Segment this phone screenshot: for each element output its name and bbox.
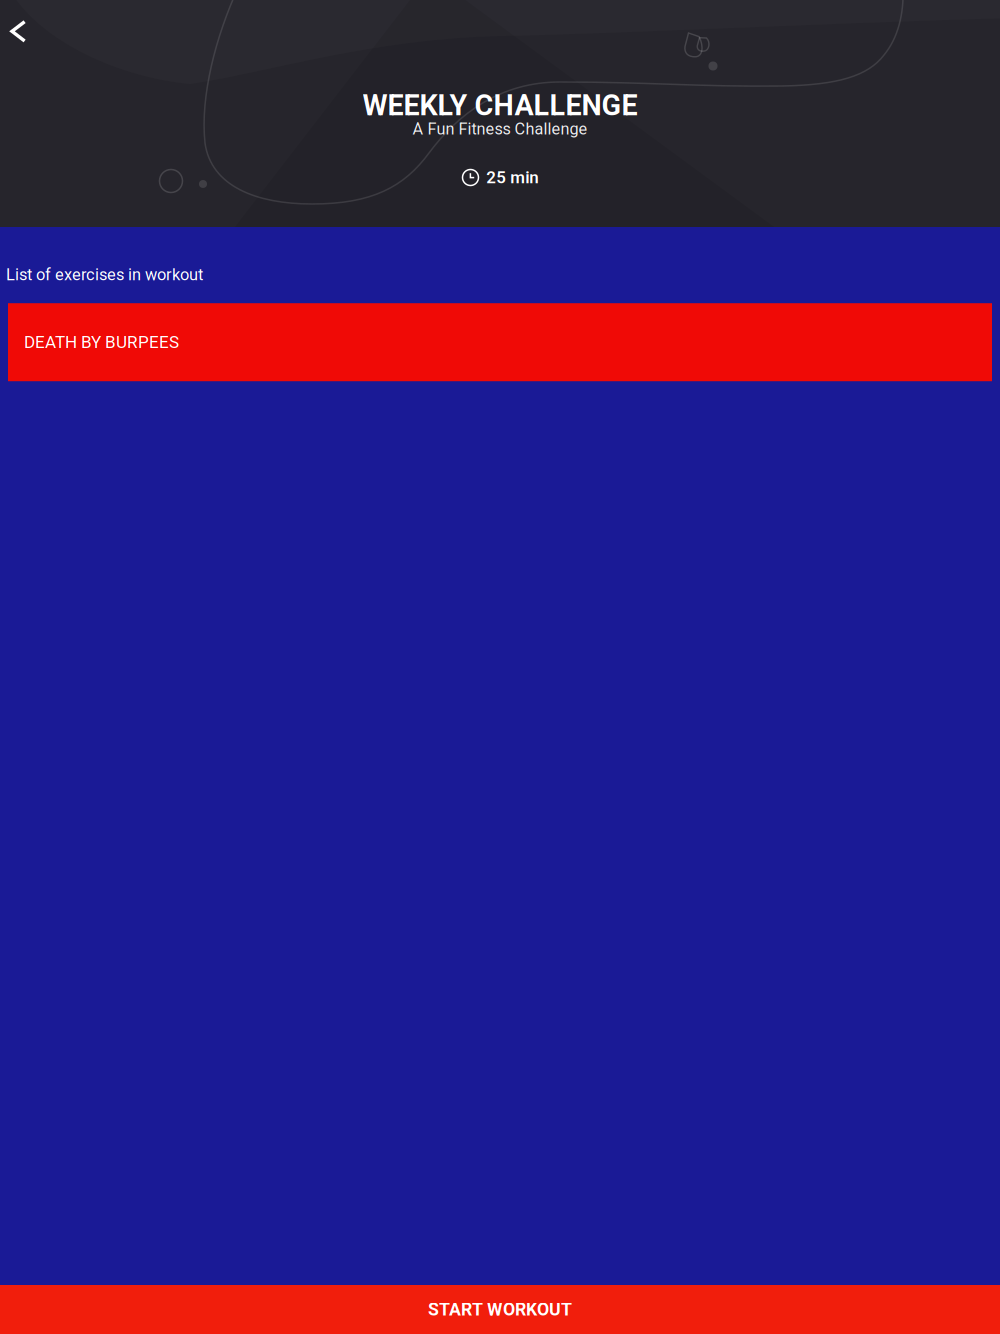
staticText: A Fun Fitness Challenge [412,119,587,139]
staticText: List of exercises in workout [6,265,203,284]
button[interactable]: Back [0,0,40,57]
staticText: DEATH BY BURPEES [24,332,179,352]
button[interactable]: DEATH BY BURPEES [8,303,992,381]
button[interactable]: START WORKOUT [0,1285,1000,1334]
staticText: WEEKLY CHALLENGE [362,89,637,122]
staticText: 25 min [486,168,538,187]
staticText: START WORKOUT [428,1299,572,1320]
